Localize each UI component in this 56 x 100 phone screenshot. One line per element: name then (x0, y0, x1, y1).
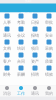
button[interactable]: 消息 (0, 85, 14, 96)
staticText: 考勤 (17, 20, 25, 25)
button[interactable]: 会议 (14, 25, 28, 38)
staticText: 薪酬 (17, 72, 25, 77)
staticText: 日报 (31, 20, 39, 25)
staticText: 培训 (17, 46, 25, 51)
button[interactable]: 项目 (28, 38, 42, 51)
button[interactable]: 考勤 (14, 12, 28, 25)
staticText: 合同 (17, 59, 25, 64)
staticText: 招聘 (31, 72, 39, 77)
staticText: 会议 (17, 33, 25, 38)
button[interactable]: 安全 (42, 25, 56, 38)
button[interactable]: 客户 (0, 51, 14, 64)
button[interactable]: 人事 (0, 12, 14, 25)
button[interactable]: 通讯 (28, 85, 42, 96)
staticText: 工作 (17, 91, 25, 96)
staticText: 资产 (31, 59, 39, 64)
button[interactable]: 报销 (28, 25, 42, 38)
button[interactable]: 资产 (28, 51, 42, 64)
button[interactable]: 日报 (28, 12, 42, 25)
staticText: 财务 (3, 72, 11, 77)
button[interactable]: 质量 (42, 51, 56, 64)
button[interactable]: 财务 (0, 64, 14, 77)
staticText: 客户 (3, 59, 11, 64)
staticText: 文档 (3, 46, 11, 51)
staticText: 消息 (3, 91, 11, 96)
button[interactable]: 培训 (14, 38, 28, 51)
button[interactable]: 招聘 (28, 64, 42, 77)
staticText: 安全 (45, 33, 53, 38)
staticText: 人事 (3, 20, 11, 25)
button[interactable]: 审批 (42, 12, 56, 25)
button[interactable]: 绩效 (42, 64, 56, 77)
staticText: 9:41 (24, 0, 31, 3)
staticText: 我的 (45, 91, 53, 96)
button[interactable]: 工作 (14, 85, 28, 96)
staticText: 质量 (45, 59, 53, 64)
staticText: 通讯 (3, 33, 11, 38)
staticText: 通讯 (31, 91, 39, 96)
button[interactable]: 我的 (42, 85, 56, 96)
button[interactable]: 薪酬 (14, 64, 28, 77)
button[interactable]: 合同 (14, 51, 28, 64)
staticText: 绩效 (45, 72, 53, 77)
button[interactable]: 通讯 (0, 25, 14, 38)
button[interactable]: 采购 (42, 38, 56, 51)
staticText: 工作台 (20, 11, 35, 18)
staticText: 报销 (31, 33, 39, 38)
staticText: 审批 (45, 20, 53, 25)
staticText: 采购 (45, 46, 53, 51)
button[interactable]: 文档 (0, 38, 14, 51)
staticText: 项目 (31, 46, 39, 51)
